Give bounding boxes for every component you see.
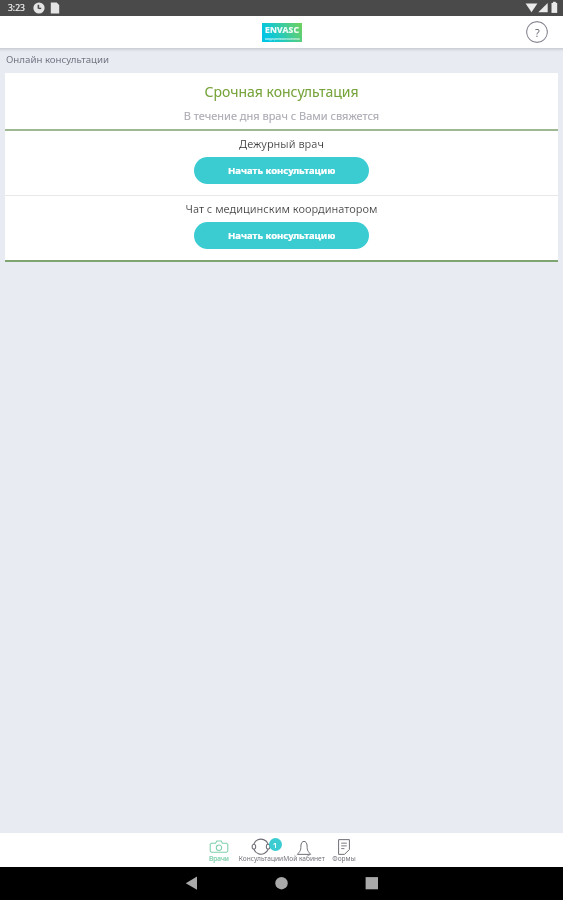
staticText: 1 [273,840,278,850]
staticText: Консультации [232,854,290,863]
staticText: Онлайн консультации [6,53,109,66]
staticText: Чат с медицинским координатором [5,201,558,216]
button[interactable]: Мой кабинет [275,833,333,867]
button[interactable]: Help [526,21,548,43]
button[interactable]: Начать консультацию [194,222,369,249]
staticText: ENVASC [265,24,300,36]
button[interactable]: Консультации [232,833,290,867]
button[interactable]: Начать консультацию [194,157,369,184]
staticText: Срочная консультация [5,82,558,101]
staticText: Мой кабинет [275,854,333,863]
staticText: 3:23 [8,2,25,14]
staticText: Формы [315,854,373,863]
button[interactable]: Врачи [190,833,248,867]
staticText: Начать консультацию [228,164,336,177]
staticText: медицинская клиника [265,37,300,41]
staticText: Дежурный врач [5,136,558,151]
staticText: Начать консультацию [228,229,336,242]
button[interactable]: Формы [315,833,373,867]
staticText: Врачи [190,854,248,863]
staticText: В течение дня врач с Вами свяжется [5,108,558,123]
staticText: ? [535,25,540,40]
